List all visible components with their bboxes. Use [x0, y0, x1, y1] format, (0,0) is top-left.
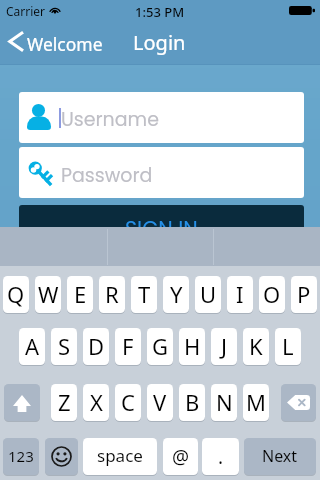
button[interactable]: I	[227, 276, 253, 313]
button[interactable]: Password	[19, 147, 304, 198]
staticText: V	[153, 387, 167, 417]
staticText: C	[121, 387, 135, 417]
button[interactable]: E	[67, 276, 93, 313]
staticText: Password	[61, 162, 153, 189]
button[interactable]: X	[83, 384, 109, 421]
staticText: @	[172, 444, 190, 470]
button[interactable]: Emoji	[45, 438, 78, 475]
button[interactable]: T	[131, 276, 157, 313]
button[interactable]: M	[243, 384, 269, 421]
staticText: R	[105, 279, 119, 309]
button[interactable]: R	[99, 276, 125, 313]
staticText: H	[184, 331, 201, 361]
staticText: X	[90, 387, 103, 417]
staticText: M	[246, 387, 266, 417]
staticText: N	[216, 387, 233, 417]
button[interactable]: Next	[244, 438, 316, 475]
button[interactable]: F	[115, 328, 141, 365]
staticText: U	[200, 279, 217, 309]
button[interactable]: space	[83, 438, 157, 475]
button[interactable]: Welcome	[4, 28, 104, 56]
staticText: space	[97, 444, 143, 467]
staticText: 123	[8, 446, 34, 466]
button[interactable]: SIGN IN	[19, 205, 304, 251]
staticText: .	[218, 444, 224, 470]
staticText: Q	[7, 279, 25, 309]
button[interactable]: Y	[163, 276, 189, 313]
staticText: S	[58, 331, 71, 361]
staticText: Next	[262, 445, 298, 467]
staticText: G	[152, 331, 169, 361]
button[interactable]: C	[115, 384, 141, 421]
staticText: E	[74, 279, 87, 309]
staticText: B	[185, 387, 200, 417]
staticText: Carrier	[6, 3, 46, 19]
button[interactable]: H	[179, 328, 205, 365]
button[interactable]: Q	[3, 276, 29, 313]
button[interactable]: D	[83, 328, 109, 365]
button[interactable]: Username	[19, 92, 304, 143]
button[interactable]: V	[147, 384, 173, 421]
button[interactable]: 123	[3, 438, 39, 475]
button[interactable]: G	[147, 328, 173, 365]
button[interactable]: B	[179, 384, 205, 421]
button[interactable]: @	[163, 438, 198, 475]
staticText: 1:53 PM	[135, 3, 185, 21]
button[interactable]: L	[275, 328, 301, 365]
staticText: K	[249, 331, 263, 361]
staticText: Username	[61, 106, 159, 133]
button[interactable]: Shift	[4, 384, 40, 421]
button[interactable]: A	[19, 328, 45, 365]
button[interactable]: K	[243, 328, 269, 365]
button[interactable]: N	[211, 384, 237, 421]
staticText: Welcome	[27, 32, 103, 56]
staticText: L	[282, 331, 294, 361]
staticText: D	[88, 331, 105, 361]
staticText: Y	[170, 279, 183, 309]
staticText: Login	[133, 29, 186, 56]
button[interactable]: W	[35, 276, 61, 313]
staticText: Z	[58, 387, 71, 417]
staticText: P	[297, 279, 311, 309]
staticText: I	[236, 279, 244, 309]
button[interactable]: .	[202, 438, 239, 475]
button[interactable]: S	[51, 328, 77, 365]
staticText: O	[263, 279, 281, 309]
button[interactable]: P	[291, 276, 317, 313]
staticText: F	[122, 331, 134, 361]
button[interactable]: Z	[51, 384, 77, 421]
staticText: SIGN IN	[125, 214, 198, 243]
button[interactable]: O	[259, 276, 285, 313]
button[interactable]: Backspace	[281, 384, 316, 421]
staticText: T	[138, 279, 151, 309]
button[interactable]: J	[211, 328, 237, 365]
staticText: J	[221, 331, 228, 361]
button[interactable]: U	[195, 276, 221, 313]
staticText: W	[38, 279, 59, 309]
staticText: A	[25, 331, 40, 361]
